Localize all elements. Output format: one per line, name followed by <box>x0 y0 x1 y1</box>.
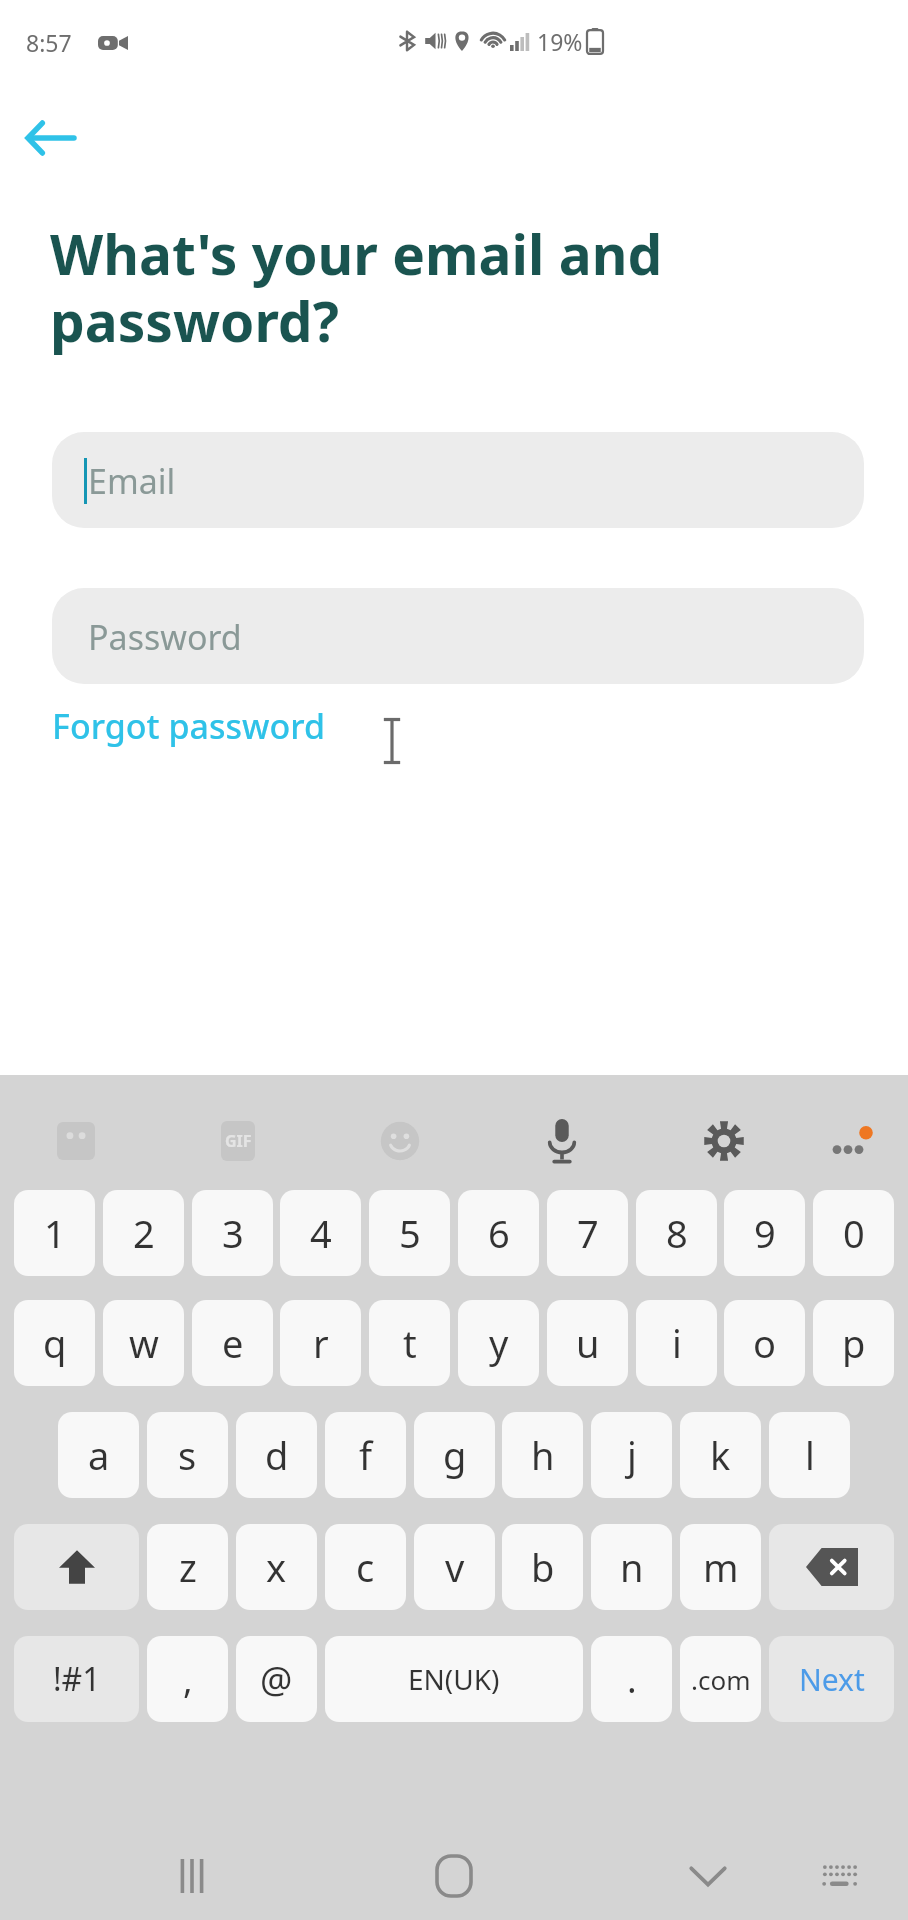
button[interactable]: i <box>636 1300 717 1386</box>
staticText: d <box>265 1429 289 1481</box>
staticText: . <box>627 1655 637 1704</box>
button[interactable]: More options <box>820 1113 882 1175</box>
button[interactable]: j <box>591 1412 672 1498</box>
button[interactable]: z <box>147 1524 228 1610</box>
button[interactable]: 5 <box>369 1190 450 1276</box>
button[interactable]: u <box>547 1300 628 1386</box>
button[interactable]: .com <box>680 1636 761 1722</box>
button[interactable]: t <box>369 1300 450 1386</box>
button[interactable]: Stickers <box>48 1113 104 1169</box>
staticText: p <box>842 1317 866 1369</box>
staticText: r <box>313 1317 329 1369</box>
button[interactable]: Next <box>769 1636 894 1722</box>
button[interactable]: p <box>813 1300 894 1386</box>
button[interactable]: Hide keyboard <box>676 1844 740 1908</box>
button[interactable]: Shift <box>14 1524 139 1610</box>
staticText: Email <box>88 458 176 504</box>
button[interactable]: @ <box>236 1636 317 1722</box>
button[interactable]: m <box>680 1524 761 1610</box>
staticText: @ <box>260 1655 293 1704</box>
button[interactable]: Emoji <box>372 1113 428 1169</box>
button[interactable]: 7 <box>547 1190 628 1276</box>
staticText: c <box>356 1541 375 1593</box>
button[interactable]: q <box>14 1300 95 1386</box>
staticText: h <box>531 1429 555 1481</box>
button[interactable]: 0 <box>813 1190 894 1276</box>
button[interactable]: k <box>680 1412 761 1498</box>
button[interactable]: Recents <box>160 1844 224 1908</box>
staticText: GIF <box>225 1130 252 1152</box>
button[interactable]: f <box>325 1412 406 1498</box>
staticText: 3 <box>222 1207 244 1259</box>
staticText: !#1 <box>53 1657 101 1701</box>
button[interactable]: 6 <box>458 1190 539 1276</box>
staticText: 1 <box>44 1207 66 1259</box>
staticText: a <box>88 1429 110 1481</box>
staticText: 2 <box>133 1207 155 1259</box>
button[interactable]: , <box>147 1636 228 1722</box>
button[interactable]: Forgot password <box>44 690 334 762</box>
staticText: 6 <box>488 1207 510 1259</box>
button[interactable]: w <box>103 1300 184 1386</box>
staticText: e <box>222 1317 244 1369</box>
button[interactable]: 3 <box>192 1190 273 1276</box>
button[interactable]: e <box>192 1300 273 1386</box>
button[interactable]: Email <box>52 432 864 528</box>
staticText: b <box>531 1541 555 1593</box>
button[interactable]: n <box>591 1524 672 1610</box>
staticText: v <box>445 1541 465 1593</box>
staticText: m <box>703 1541 739 1593</box>
staticText: k <box>710 1429 731 1481</box>
staticText: 8 <box>666 1207 688 1259</box>
staticText: 9 <box>754 1207 776 1259</box>
button[interactable]: b <box>502 1524 583 1610</box>
staticText: l <box>805 1429 815 1481</box>
staticText: 4 <box>310 1207 332 1259</box>
staticText: i <box>672 1317 682 1369</box>
button[interactable]: Backspace <box>769 1524 894 1610</box>
button[interactable]: Voice input <box>534 1113 590 1169</box>
button[interactable]: GIF <box>210 1113 266 1169</box>
button[interactable]: d <box>236 1412 317 1498</box>
staticText: z <box>179 1541 197 1593</box>
button[interactable]: s <box>147 1412 228 1498</box>
button[interactable]: . <box>591 1636 672 1722</box>
staticText: n <box>620 1541 644 1593</box>
button[interactable]: 8 <box>636 1190 717 1276</box>
staticText: , <box>183 1655 193 1704</box>
button[interactable]: Home <box>422 1844 486 1908</box>
button[interactable]: 2 <box>103 1190 184 1276</box>
button[interactable]: h <box>502 1412 583 1498</box>
button[interactable]: c <box>325 1524 406 1610</box>
staticText: 8:57 <box>26 27 72 58</box>
button[interactable]: 9 <box>724 1190 805 1276</box>
button[interactable]: x <box>236 1524 317 1610</box>
staticText: 19% <box>537 26 583 56</box>
button[interactable]: Password <box>52 588 864 684</box>
button[interactable]: 1 <box>14 1190 95 1276</box>
staticText: x <box>266 1541 287 1593</box>
staticText: y <box>489 1317 509 1369</box>
button[interactable]: Back <box>12 100 88 176</box>
staticText: u <box>576 1317 600 1369</box>
button[interactable]: Change keyboard <box>808 1844 872 1908</box>
staticText: .com <box>691 1662 751 1697</box>
button[interactable]: Space <box>325 1636 583 1722</box>
staticText: 7 <box>577 1207 599 1259</box>
button[interactable]: v <box>414 1524 495 1610</box>
button[interactable]: o <box>724 1300 805 1386</box>
button[interactable]: a <box>58 1412 139 1498</box>
button[interactable]: r <box>280 1300 361 1386</box>
button[interactable]: Keyboard settings <box>696 1113 752 1169</box>
staticText: t <box>403 1317 417 1369</box>
staticText: EN(UK) <box>408 1660 500 1698</box>
button[interactable]: l <box>769 1412 850 1498</box>
button[interactable]: y <box>458 1300 539 1386</box>
button[interactable]: g <box>414 1412 495 1498</box>
button[interactable]: 4 <box>280 1190 361 1276</box>
staticText: q <box>43 1317 67 1369</box>
staticText: j <box>627 1429 637 1481</box>
staticText: 0 <box>843 1207 865 1259</box>
button[interactable]: !#1 <box>14 1636 139 1722</box>
staticText: Next <box>799 1659 865 1700</box>
